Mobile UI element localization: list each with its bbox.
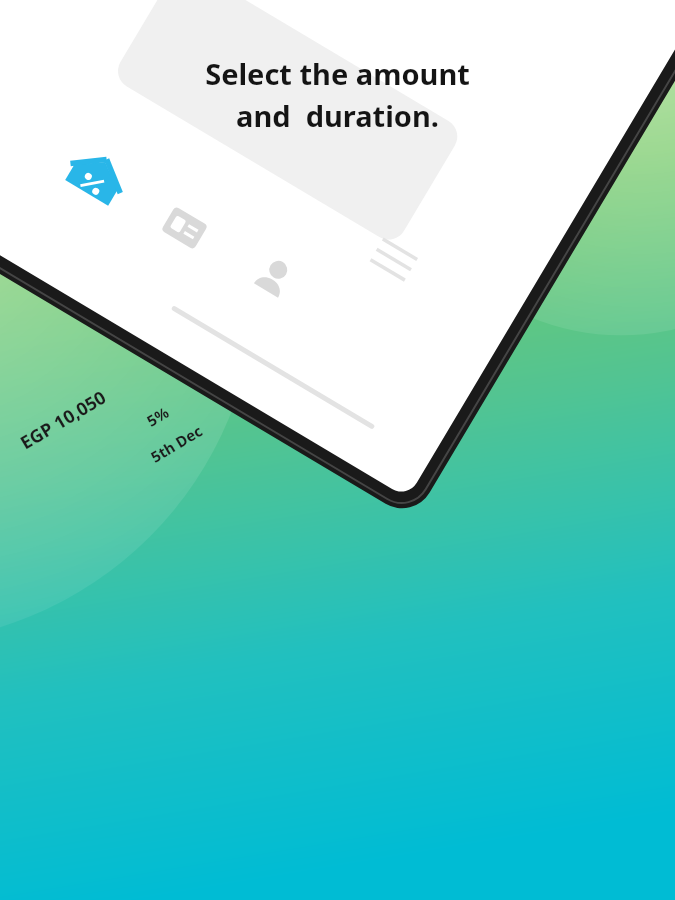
staticText: 5th Dec bbox=[147, 420, 206, 467]
button[interactable]: Loans bbox=[56, 590, 106, 640]
staticText: and duration. bbox=[236, 96, 439, 135]
staticText: EGP 10,050 bbox=[16, 385, 111, 455]
staticText: 5% bbox=[143, 402, 173, 431]
button[interactable]: Back bbox=[0, 632, 48, 680]
button[interactable]: Cards bbox=[124, 554, 172, 602]
button[interactable]: Profile bbox=[194, 518, 242, 566]
staticText: Select the amount bbox=[205, 54, 470, 93]
